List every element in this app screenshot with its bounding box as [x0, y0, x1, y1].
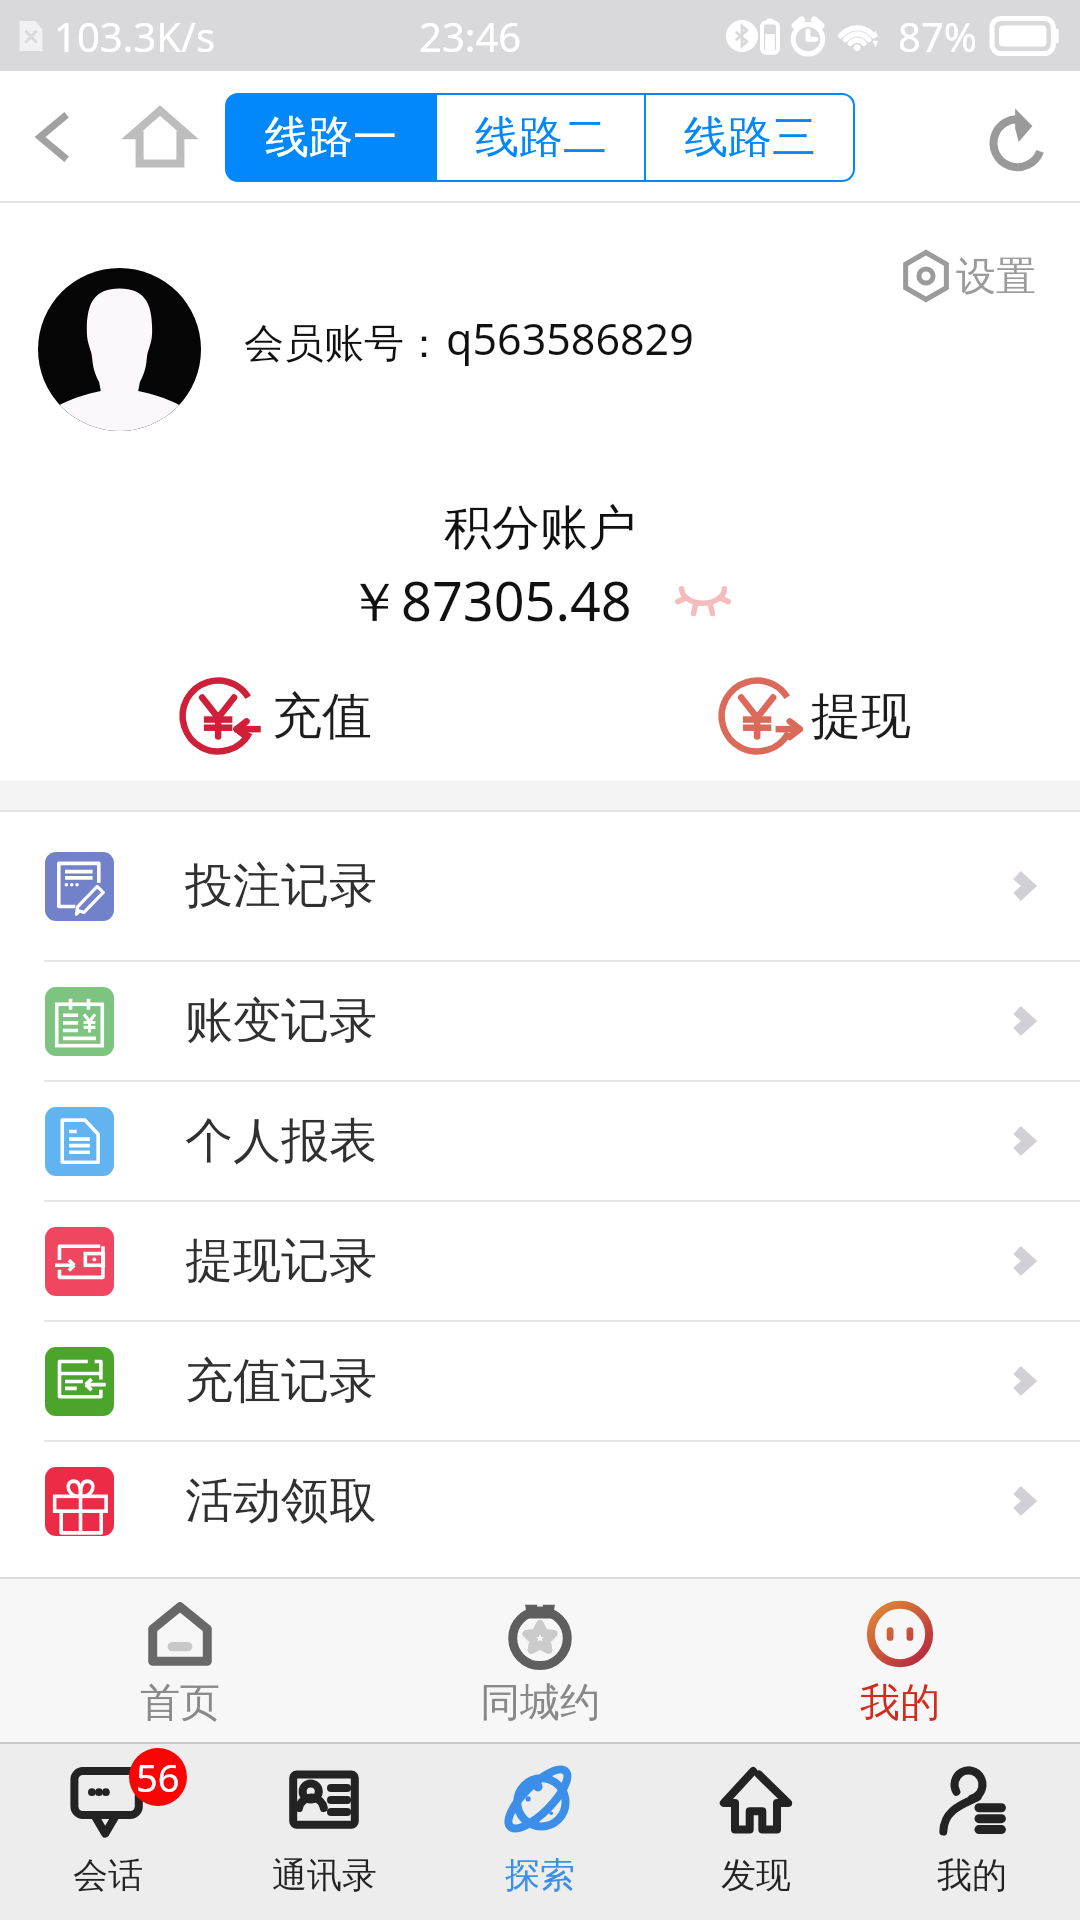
- staticText: 提现: [811, 685, 911, 748]
- staticText: 会话: [73, 1853, 143, 1897]
- staticText: 我的: [860, 1677, 940, 1727]
- button[interactable]: 提现: [721, 677, 911, 755]
- button[interactable]: Refresh: [960, 71, 1080, 203]
- staticText: 个人报表: [185, 1111, 377, 1171]
- button[interactable]: 56: [0, 1744, 216, 1920]
- staticText: 同城约: [480, 1677, 600, 1727]
- staticText: 首页: [140, 1677, 220, 1727]
- staticText: 87%: [898, 9, 977, 63]
- button[interactable]: 投注记录: [0, 812, 1080, 960]
- button[interactable]: 同城约: [360, 1579, 720, 1742]
- button[interactable]: 通讯录: [216, 1744, 432, 1920]
- staticText: 充值: [272, 685, 372, 748]
- staticText: 103.3K/s: [54, 9, 216, 63]
- staticText: q563586829: [446, 309, 694, 368]
- staticText: 56: [136, 1751, 180, 1803]
- button[interactable]: 提现记录: [0, 1202, 1080, 1320]
- staticText: 23:46: [419, 9, 522, 63]
- button[interactable]: 发现: [648, 1744, 864, 1920]
- button[interactable]: Home: [104, 71, 216, 203]
- button[interactable]: 账变记录: [0, 962, 1080, 1080]
- button[interactable]: 个人报表: [0, 1082, 1080, 1200]
- staticText: 线路三: [684, 110, 816, 165]
- button[interactable]: 线路三: [646, 95, 853, 180]
- button[interactable]: 线路二: [437, 95, 644, 180]
- button[interactable]: 充值: [182, 677, 372, 755]
- staticText: 活动领取: [185, 1471, 377, 1531]
- staticText: 会员账号：: [244, 318, 444, 368]
- staticText: 我的: [937, 1853, 1007, 1897]
- staticText: 发现: [721, 1853, 791, 1897]
- staticText: ￥87305.48: [347, 563, 632, 637]
- staticText: 积分账户: [444, 498, 636, 558]
- staticText: 提现记录: [185, 1231, 377, 1291]
- staticText: 账变记录: [185, 991, 377, 1051]
- button[interactable]: Back: [0, 71, 104, 203]
- staticText: 充值记录: [185, 1351, 377, 1411]
- staticText: 设置: [956, 251, 1036, 301]
- button[interactable]: Avatar: [38, 268, 201, 431]
- staticText: 探索: [505, 1853, 575, 1897]
- button[interactable]: 充值记录: [0, 1322, 1080, 1440]
- button[interactable]: Toggle balance visibility: [672, 572, 734, 628]
- button[interactable]: 我的: [720, 1579, 1080, 1742]
- staticText: 线路二: [475, 110, 607, 165]
- staticText: 通讯录: [272, 1853, 377, 1897]
- button[interactable]: 设置: [898, 248, 1036, 304]
- staticText: 投注记录: [185, 856, 377, 916]
- button[interactable]: 线路一: [227, 95, 435, 180]
- button[interactable]: 我的: [864, 1744, 1080, 1920]
- button[interactable]: 探索: [432, 1744, 648, 1920]
- button[interactable]: 首页: [0, 1579, 360, 1742]
- button[interactable]: 活动领取: [0, 1442, 1080, 1560]
- staticText: 线路一: [265, 110, 397, 165]
